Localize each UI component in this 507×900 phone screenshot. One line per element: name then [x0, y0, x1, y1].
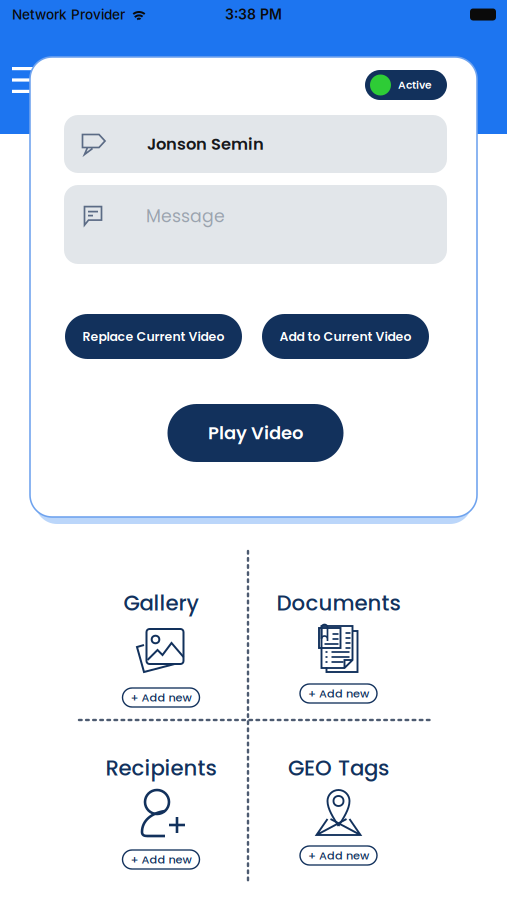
button[interactable]: Play Video [167, 404, 343, 462]
button[interactable]: Menu [12, 67, 38, 93]
button[interactable]: Replace Current Video [65, 314, 242, 359]
staticText: Play Video [208, 420, 303, 446]
staticText: Active [398, 77, 432, 92]
staticText: Network Provider [12, 6, 125, 23]
button[interactable]: + Add new [122, 688, 199, 707]
staticText: Add to Current Video [279, 328, 411, 345]
button[interactable]: + Add new [122, 850, 199, 869]
staticText: GEO Tags [288, 753, 389, 783]
button[interactable]: + Add new [300, 846, 377, 865]
staticText: Recipients [105, 753, 216, 783]
button[interactable]: Message [64, 185, 447, 264]
staticText: + Add new [308, 848, 369, 863]
staticText: Documents [276, 588, 400, 618]
staticText: Message [146, 204, 225, 228]
staticText: + Add new [130, 690, 191, 705]
staticText: + Add new [130, 852, 191, 867]
staticText: Replace Current Video [82, 328, 224, 345]
button[interactable]: Add to Current Video [262, 314, 429, 359]
staticText: 3:38 PM [225, 6, 282, 23]
button[interactable]: Active [365, 70, 447, 100]
staticText: + Add new [308, 686, 369, 701]
button[interactable]: Jonson Semin [64, 115, 447, 173]
staticText: Gallery [123, 588, 198, 618]
staticText: Jonson Semin [147, 133, 264, 155]
button[interactable]: + Add new [300, 684, 377, 703]
